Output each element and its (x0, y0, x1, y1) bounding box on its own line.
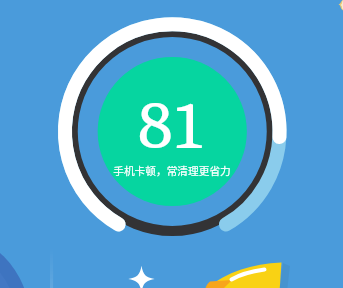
staticText: 手机卡顿，常清理更省力 (113, 163, 231, 178)
button[interactable]: Clean up phone, score 81 (98, 57, 247, 206)
staticText: 81 (136, 89, 203, 164)
